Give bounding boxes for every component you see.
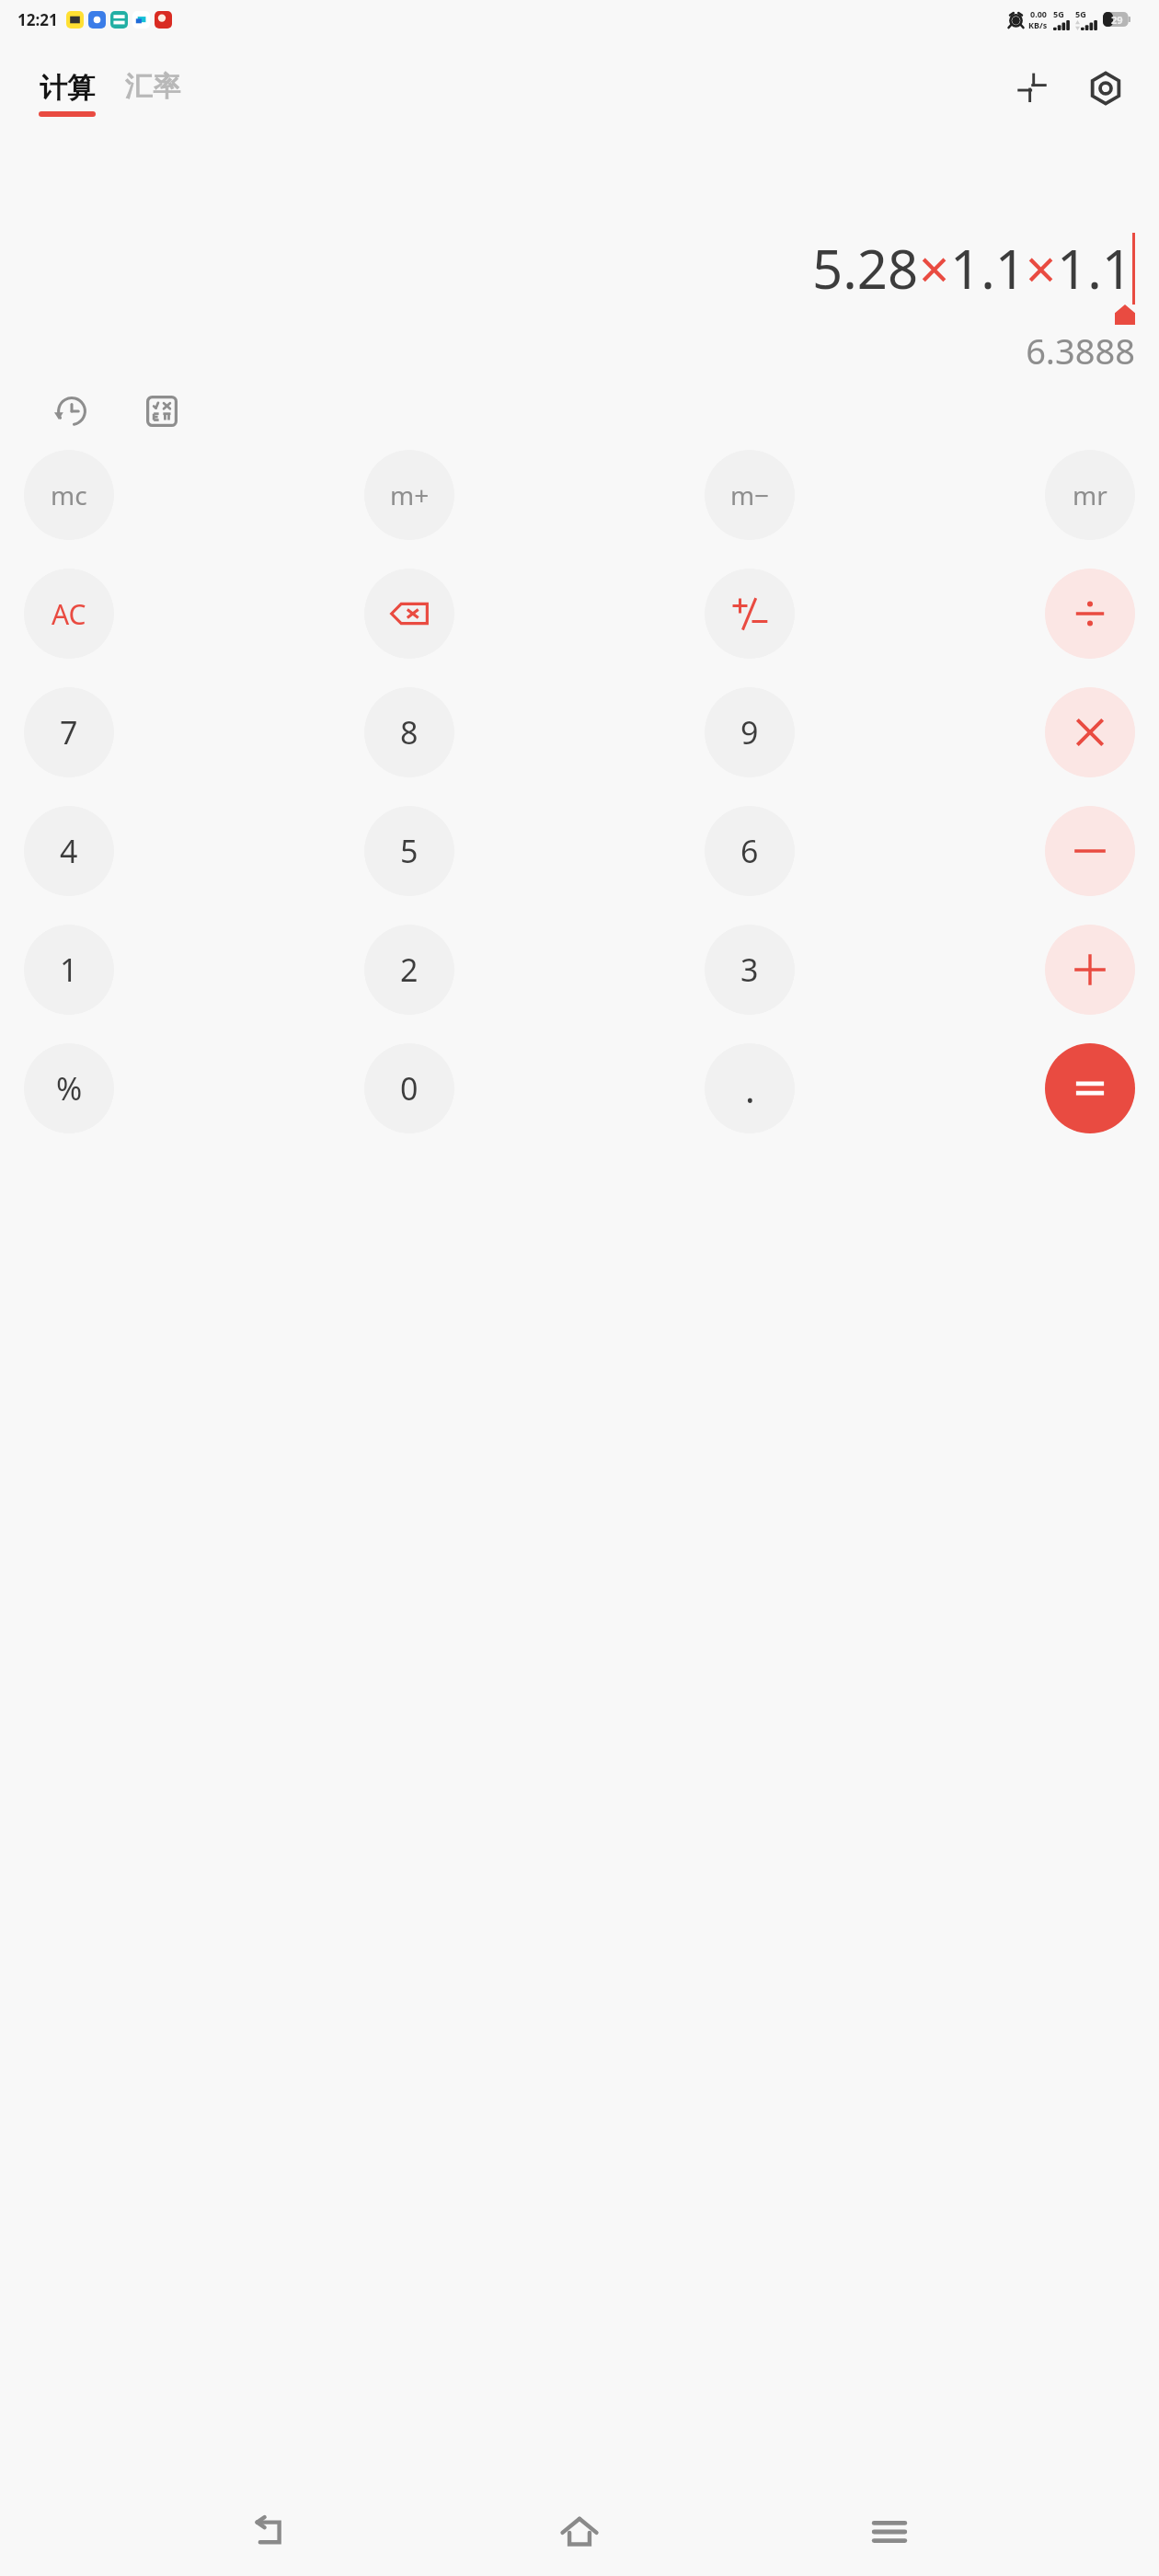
button[interactable]: Back [231, 2492, 310, 2571]
staticText: 0 [400, 1067, 419, 1110]
button[interactable]: Backspace [364, 569, 454, 659]
button[interactable]: Collapse keyboard [1008, 64, 1056, 112]
staticText: 5G [1053, 8, 1064, 19]
staticText: 29 [1111, 13, 1123, 27]
button[interactable]: m− [705, 450, 795, 540]
staticText: 8 [400, 711, 419, 753]
button[interactable]: 4 [24, 806, 114, 896]
button[interactable]: 计算 [39, 71, 96, 117]
button[interactable]: . [705, 1043, 795, 1133]
button[interactable]: % [24, 1043, 114, 1133]
staticText: 1 [60, 949, 78, 991]
staticText: 5 [400, 830, 419, 872]
staticText: × [1026, 232, 1057, 305]
button[interactable]: 5 [364, 806, 454, 896]
button[interactable]: 1 [24, 925, 114, 1015]
staticText: AC [52, 595, 86, 633]
staticText: 汇率 [125, 69, 180, 104]
staticText: m+ [390, 477, 430, 512]
staticText: 0.00 [1030, 8, 1047, 19]
button[interactable]: Equals [1045, 1043, 1135, 1133]
staticText: 6.3888 [1026, 327, 1135, 374]
button[interactable]: 7 [24, 687, 114, 777]
button[interactable]: Recent apps [850, 2492, 929, 2571]
button[interactable]: History [46, 385, 98, 437]
staticText: mc [51, 477, 87, 512]
staticText: 9 [740, 711, 759, 753]
button[interactable]: Minus [1045, 806, 1135, 896]
button[interactable]: AC [24, 569, 114, 659]
staticText: 5.28 [812, 232, 919, 305]
button[interactable]: Plus [1045, 925, 1135, 1015]
button[interactable]: 2 [364, 925, 454, 1015]
staticText: 12:21 [17, 9, 58, 30]
button[interactable]: Multiply [1045, 687, 1135, 777]
staticText: 6 [740, 830, 759, 872]
staticText: 2 [400, 949, 419, 991]
staticText: 1.1 [950, 232, 1026, 305]
button[interactable]: 3 [705, 925, 795, 1015]
button[interactable]: Scientific calculator [136, 385, 188, 437]
staticText: × [919, 232, 950, 305]
staticText: 5G [1075, 8, 1086, 19]
staticText: % [56, 1067, 83, 1110]
staticText: 3 [740, 949, 759, 991]
button[interactable]: mr [1045, 450, 1135, 540]
staticText: m− [730, 477, 770, 512]
staticText: 7 [60, 711, 78, 753]
button[interactable]: 0 [364, 1043, 454, 1133]
button[interactable]: 8 [364, 687, 454, 777]
staticText: 计算 [40, 71, 95, 106]
button[interactable]: Home [540, 2492, 619, 2571]
staticText: . [745, 1064, 755, 1113]
button[interactable]: Settings [1082, 64, 1130, 112]
staticText: KB/s [1028, 19, 1048, 30]
staticText: mr [1073, 477, 1107, 512]
button[interactable]: Plus minus [705, 569, 795, 659]
button[interactable]: 6 [705, 806, 795, 896]
button[interactable]: mc [24, 450, 114, 540]
staticText: 1.1 [1057, 232, 1132, 305]
button[interactable]: 汇率 [125, 69, 180, 119]
staticText: 4 [60, 830, 78, 872]
button[interactable]: m+ [364, 450, 454, 540]
button[interactable]: 9 [705, 687, 795, 777]
button[interactable]: Divide [1045, 569, 1135, 659]
